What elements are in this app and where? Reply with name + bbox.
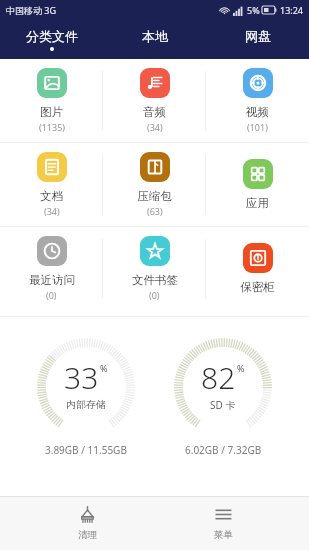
- staticText: 6.02GB / 7.32GB: [185, 443, 262, 457]
- staticText: (34): [147, 121, 163, 133]
- staticText: 5%: [247, 4, 260, 16]
- button[interactable]: 视频: [206, 59, 309, 142]
- staticText: 13:24: [280, 4, 304, 16]
- staticText: (34): [44, 205, 60, 217]
- staticText: (0): [46, 289, 57, 301]
- staticText: (101): [247, 121, 268, 133]
- button[interactable]: 应用: [206, 143, 309, 226]
- staticText: 分类文件: [26, 28, 78, 44]
- staticText: 文件书签: [132, 273, 178, 287]
- button[interactable]: 分类文件: [0, 20, 103, 59]
- staticText: 本地: [142, 28, 168, 44]
- button[interactable]: 音频: [103, 59, 206, 142]
- staticText: 压缩包: [137, 189, 172, 203]
- button[interactable]: 文件书签: [103, 227, 206, 310]
- staticText: 保密柜: [240, 280, 275, 294]
- button[interactable]: 最近访问: [0, 227, 103, 310]
- staticText: 图片: [40, 105, 63, 119]
- button[interactable]: 菜单: [188, 496, 258, 550]
- button[interactable]: 网盘: [206, 20, 309, 59]
- staticText: 应用: [246, 196, 269, 210]
- staticText: 中国移动 3G: [6, 4, 57, 16]
- staticText: 3.89GB / 11.55GB: [45, 443, 127, 457]
- button[interactable]: 保密柜: [206, 227, 309, 310]
- staticText: %: [100, 362, 108, 374]
- staticText: (0): [149, 289, 160, 301]
- staticText: 菜单: [214, 529, 233, 541]
- staticText: 网盘: [245, 28, 271, 44]
- button[interactable]: 文档: [0, 143, 103, 226]
- button[interactable]: 清理: [52, 496, 122, 550]
- button[interactable]: 本地: [103, 20, 206, 59]
- staticText: 视频: [246, 105, 269, 119]
- staticText: (63): [147, 205, 163, 217]
- staticText: 清理: [78, 529, 97, 541]
- staticText: 33: [64, 357, 99, 398]
- button[interactable]: 压缩包: [103, 143, 206, 226]
- staticText: 内部存储: [66, 398, 106, 411]
- staticText: 最近访问: [29, 273, 75, 287]
- staticText: SD 卡: [210, 398, 236, 412]
- button[interactable]: 图片: [0, 59, 103, 142]
- staticText: 音频: [143, 105, 166, 119]
- staticText: 82: [201, 357, 236, 398]
- staticText: (1135): [39, 121, 65, 133]
- staticText: 文档: [40, 189, 63, 203]
- staticText: %: [237, 362, 245, 374]
